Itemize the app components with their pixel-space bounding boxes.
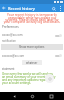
staticText: whatever [26, 61, 38, 65]
staticText: notification [2, 39, 16, 43]
button[interactable]: Back [0, 4, 8, 12]
staticText: xxxxxxx@xx.com [2, 54, 25, 58]
staticText: Preferences [2, 25, 19, 29]
button[interactable]: xxxxx@xx.com [0, 32, 64, 38]
staticText: statement [2, 67, 15, 71]
button[interactable]: Show more options [1, 44, 63, 50]
button[interactable]: Home [27, 92, 37, 100]
staticText: xxxxx@xx.com [2, 33, 23, 37]
button[interactable]: Add [45, 74, 54, 83]
button[interactable]: More options [57, 5, 64, 12]
button[interactable]: Search [50, 5, 57, 12]
staticText: Your recent history is temporarily unava… [2, 13, 62, 24]
button[interactable]: notification [0, 38, 64, 43]
button[interactable]: Back [9, 92, 19, 100]
staticText: Recent history [8, 6, 35, 11]
staticText: Once every few weeks we will send you an… [2, 72, 56, 85]
staticText: Show more options [19, 45, 45, 49]
button[interactable]: Recents [46, 92, 56, 100]
button[interactable]: whatever [22, 60, 42, 65]
button[interactable]: xxxxxxx@xx.com [0, 53, 64, 58]
